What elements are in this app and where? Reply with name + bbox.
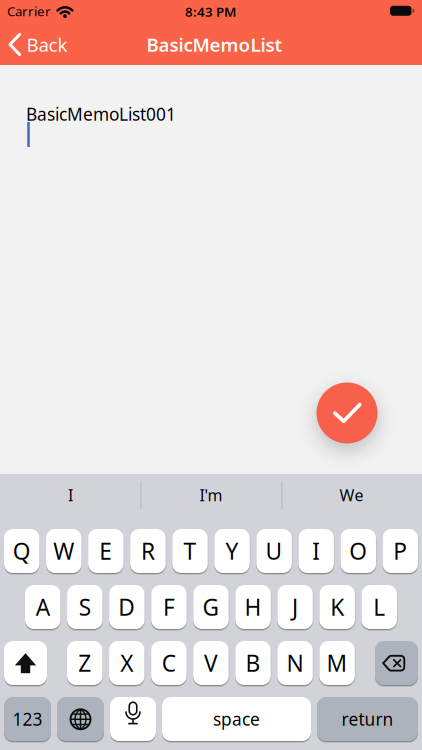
button[interactable]: D bbox=[109, 585, 145, 629]
staticText: X bbox=[120, 648, 133, 678]
button[interactable]: I bbox=[298, 529, 334, 573]
button[interactable]: A bbox=[25, 585, 60, 629]
staticText: O bbox=[349, 536, 367, 566]
button[interactable]: C bbox=[151, 641, 187, 685]
button[interactable]: S bbox=[67, 585, 103, 629]
staticText: Y bbox=[226, 536, 239, 566]
staticText: H bbox=[245, 592, 262, 622]
button[interactable]: X bbox=[109, 641, 145, 685]
button[interactable]: Q bbox=[4, 529, 39, 573]
button[interactable]: B bbox=[235, 641, 271, 685]
staticText: U bbox=[266, 536, 283, 566]
staticText: F bbox=[163, 592, 175, 622]
button[interactable]: L bbox=[361, 585, 397, 629]
button[interactable]: K bbox=[319, 585, 355, 629]
staticText: Z bbox=[78, 648, 91, 678]
staticText: space bbox=[213, 707, 260, 730]
button[interactable]: Y bbox=[214, 529, 250, 573]
button[interactable]: V bbox=[193, 641, 229, 685]
staticText: BasicMemoList bbox=[146, 32, 282, 57]
staticText: I bbox=[312, 536, 320, 566]
staticText: B bbox=[245, 648, 260, 678]
staticText: G bbox=[202, 592, 219, 622]
staticText: 123 bbox=[12, 707, 42, 730]
staticText: S bbox=[79, 592, 91, 622]
button[interactable]: N bbox=[277, 641, 313, 685]
button[interactable]: Back bbox=[0, 22, 80, 66]
staticText: R bbox=[141, 536, 155, 566]
staticText: I'm bbox=[199, 484, 222, 506]
button[interactable]: We bbox=[286, 474, 416, 516]
button[interactable]: U bbox=[256, 529, 292, 573]
staticText: V bbox=[204, 648, 218, 678]
button[interactable]: return bbox=[317, 697, 418, 741]
button[interactable] bbox=[375, 641, 418, 685]
staticText: K bbox=[330, 592, 344, 622]
button[interactable]: P bbox=[382, 529, 418, 573]
staticText: D bbox=[118, 592, 135, 622]
staticText: 8:43 PM bbox=[185, 3, 236, 20]
staticText: BasicMemoList001 bbox=[26, 102, 176, 125]
button[interactable] bbox=[57, 697, 104, 741]
button[interactable]: 123 bbox=[4, 697, 51, 741]
staticText: A bbox=[36, 592, 50, 622]
button[interactable]: E bbox=[88, 529, 124, 573]
button[interactable]: R bbox=[130, 529, 166, 573]
staticText: We bbox=[339, 484, 363, 506]
button[interactable]: W bbox=[46, 529, 82, 573]
staticText: L bbox=[373, 592, 385, 622]
button[interactable]: F bbox=[151, 585, 187, 629]
button[interactable]: I'm bbox=[146, 474, 276, 516]
staticText: Carrier bbox=[7, 2, 51, 20]
staticText: return bbox=[341, 707, 393, 730]
button[interactable]: O bbox=[340, 529, 376, 573]
button[interactable]: J bbox=[277, 585, 313, 629]
staticText: E bbox=[99, 536, 112, 566]
button[interactable]: Z bbox=[67, 641, 102, 685]
button[interactable]: space bbox=[162, 697, 311, 741]
button[interactable] bbox=[110, 697, 156, 741]
button[interactable] bbox=[4, 641, 47, 685]
staticText: C bbox=[162, 648, 176, 678]
button[interactable]: H bbox=[235, 585, 271, 629]
staticText: M bbox=[327, 648, 348, 678]
staticText: J bbox=[292, 592, 298, 622]
staticText: Q bbox=[13, 536, 31, 566]
staticText: T bbox=[183, 536, 196, 566]
button[interactable]: G bbox=[193, 585, 229, 629]
button[interactable]: T bbox=[172, 529, 208, 573]
staticText: I bbox=[68, 484, 73, 506]
staticText: N bbox=[287, 648, 304, 678]
staticText: Back bbox=[26, 32, 67, 57]
staticText: P bbox=[393, 536, 407, 566]
button[interactable]: I bbox=[5, 474, 135, 516]
button[interactable] bbox=[316, 382, 377, 443]
staticText: W bbox=[53, 536, 74, 566]
button[interactable]: M bbox=[319, 641, 355, 685]
